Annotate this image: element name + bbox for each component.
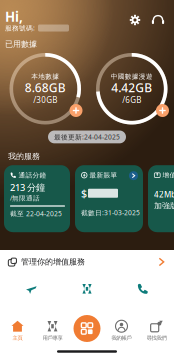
button[interactable]: 我的帳戶 [104, 315, 139, 345]
button[interactable]: 用戶專享 [35, 315, 70, 345]
staticText: 本地數據 [31, 72, 59, 81]
staticText: 截數日:31-03-2025 [81, 208, 140, 217]
button[interactable]: 主頁 [0, 315, 35, 345]
staticText: 管理你的增值服務 [21, 257, 85, 267]
button[interactable]: Settings [128, 13, 142, 27]
staticText: 已用數據 [5, 39, 37, 49]
staticText: 4.42GB [111, 80, 152, 95]
button[interactable]: Scan QR code [72, 313, 102, 343]
staticText: 增值服務 [162, 171, 174, 179]
staticText: $ [81, 186, 87, 200]
button[interactable]: 最新賬單 [75, 165, 143, 232]
staticText: /30GB [33, 94, 57, 105]
staticText: Hi, [5, 8, 23, 25]
button[interactable]: 增值服務 [148, 165, 174, 232]
staticText: 尋找我們 [146, 335, 166, 341]
button[interactable]: Shortcut [62, 274, 112, 304]
staticText: 中國數據漫遊 [111, 72, 153, 81]
staticText: 最後更新:24-04-2025 [54, 132, 120, 141]
staticText: 我的服務 [8, 151, 40, 161]
button[interactable]: Support [151, 13, 165, 27]
button[interactable]: Add data [68, 102, 84, 118]
staticText: 8.68GB [25, 80, 66, 95]
staticText: 截至 22-04-2025 [10, 209, 62, 218]
staticText: /無限通話 [10, 194, 40, 202]
staticText: 我的帳戶 [111, 335, 131, 341]
staticText: 42Mbps [154, 189, 174, 200]
button[interactable]: Add data [154, 102, 170, 118]
staticText: 213 分鐘 [10, 181, 45, 194]
staticText: 主頁 [12, 335, 22, 341]
staticText: /6GB [122, 94, 141, 105]
button[interactable]: 通話分鐘 [4, 165, 70, 232]
staticText: 服務號碼: [5, 24, 35, 32]
button[interactable]: 管理你的增值服務 [0, 250, 174, 274]
button[interactable]: 尋找我們 [139, 315, 174, 345]
staticText: 用戶專享 [42, 335, 62, 341]
button[interactable]: Shortcut [6, 274, 57, 304]
staticText: 最新賬單 [89, 171, 117, 179]
button[interactable]: Shortcut [117, 274, 168, 304]
staticText: 通話分鐘 [18, 171, 46, 179]
staticText: 加強版 [154, 201, 174, 211]
